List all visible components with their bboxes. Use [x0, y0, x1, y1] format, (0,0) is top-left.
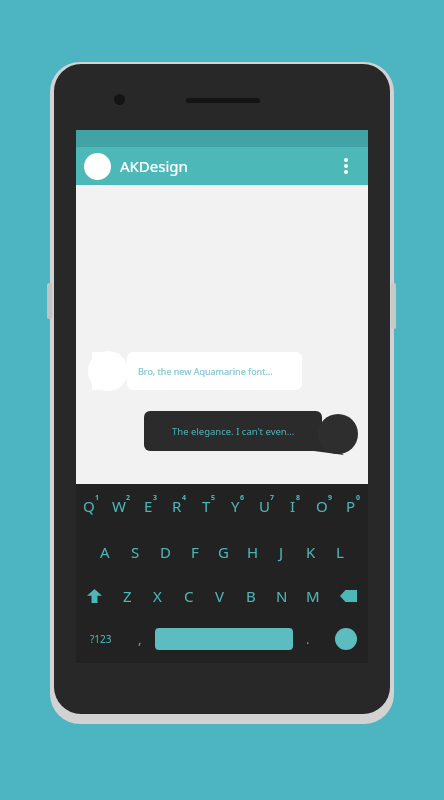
- button[interactable]: K: [296, 536, 325, 568]
- staticText: P: [346, 496, 356, 516]
- staticText: F: [191, 542, 199, 562]
- button[interactable]: R: [165, 488, 194, 524]
- button[interactable]: S: [120, 536, 150, 568]
- staticText: Z: [123, 586, 132, 606]
- button[interactable]: .: [293, 622, 323, 656]
- button[interactable]: Y: [223, 488, 252, 524]
- staticText: T: [202, 496, 211, 516]
- button[interactable]: Profile: [84, 153, 111, 180]
- staticText: U: [259, 496, 270, 516]
- button[interactable]: Profile: [76, 147, 368, 185]
- staticText: E: [144, 496, 153, 516]
- staticText: 6: [240, 493, 245, 503]
- button[interactable]: U: [252, 488, 281, 524]
- staticText: G: [218, 542, 229, 562]
- button[interactable]: Space: [155, 628, 293, 650]
- button[interactable]: M: [297, 580, 328, 612]
- staticText: 8: [296, 493, 301, 503]
- staticText: M: [306, 586, 320, 606]
- staticText: J: [279, 542, 284, 562]
- staticText: 4: [182, 493, 187, 503]
- staticText: S: [131, 542, 140, 562]
- staticText: C: [184, 586, 194, 606]
- button[interactable]: W: [106, 488, 136, 524]
- staticText: 3: [153, 493, 158, 503]
- staticText: H: [247, 542, 259, 562]
- staticText: D: [160, 542, 171, 562]
- button[interactable]: F: [180, 536, 209, 568]
- button[interactable]: P: [339, 488, 368, 524]
- button[interactable]: My avatar: [318, 414, 358, 454]
- button[interactable]: ,: [125, 622, 155, 656]
- staticText: V: [215, 586, 225, 606]
- button[interactable]: Backspace: [328, 580, 368, 612]
- staticText: L: [336, 542, 344, 562]
- staticText: 7: [270, 493, 275, 503]
- staticText: ,: [138, 630, 142, 648]
- staticText: ?123: [90, 632, 112, 646]
- button[interactable]: L: [325, 536, 354, 568]
- staticText: N: [276, 586, 288, 606]
- staticText: W: [112, 496, 126, 516]
- button[interactable]: D: [150, 536, 180, 568]
- button[interactable]: Z: [112, 580, 142, 612]
- button[interactable]: ?123: [76, 622, 125, 656]
- staticText: B: [246, 586, 256, 606]
- button[interactable]: I: [281, 488, 310, 524]
- staticText: .: [306, 630, 310, 648]
- button[interactable]: J: [267, 536, 296, 568]
- staticText: Y: [231, 496, 240, 516]
- staticText: Bro, the new Aquamarine font...: [138, 365, 273, 377]
- button[interactable]: C: [173, 580, 204, 612]
- button[interactable]: N: [266, 580, 297, 612]
- button[interactable]: X: [142, 580, 173, 612]
- staticText: 5: [211, 493, 216, 503]
- button[interactable]: G: [209, 536, 238, 568]
- button[interactable]: H: [238, 536, 267, 568]
- staticText: 1: [95, 493, 100, 503]
- button[interactable]: The elegance. I can't even...: [144, 411, 322, 451]
- staticText: 2: [126, 493, 131, 503]
- button[interactable]: Contact avatar: [88, 351, 128, 391]
- button[interactable]: A: [90, 536, 120, 568]
- staticText: K: [306, 542, 316, 562]
- staticText: O: [316, 496, 328, 516]
- button[interactable]: V: [204, 580, 235, 612]
- button[interactable]: E: [136, 488, 165, 524]
- button[interactable]: B: [235, 580, 266, 612]
- button[interactable]: Q: [76, 488, 106, 524]
- staticText: X: [153, 586, 162, 606]
- staticText: A: [100, 542, 110, 562]
- staticText: AKDesign: [120, 156, 188, 176]
- button[interactable]: T: [194, 488, 223, 524]
- staticText: I: [290, 496, 296, 516]
- button[interactable]: Shift: [76, 580, 112, 612]
- button[interactable]: More options: [331, 151, 361, 181]
- staticText: 9: [328, 493, 333, 503]
- button[interactable]: Enter: [323, 622, 368, 656]
- staticText: Q: [83, 496, 95, 516]
- button[interactable]: Bro, the new Aquamarine font...: [127, 352, 302, 390]
- button[interactable]: O: [310, 488, 339, 524]
- staticText: The elegance. I can't even...: [172, 425, 295, 438]
- staticText: R: [172, 496, 182, 516]
- staticText: 0: [356, 493, 361, 503]
